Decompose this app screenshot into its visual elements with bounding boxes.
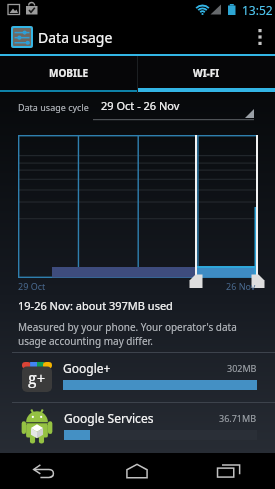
staticText: Measured by your phone. Your operator's … xyxy=(18,320,237,348)
staticText: 302MB xyxy=(227,362,257,374)
button[interactable]: Google Services xyxy=(0,403,275,452)
staticText: g+ xyxy=(28,367,46,389)
staticText: WI-FI xyxy=(193,66,220,80)
staticText: MOBILE xyxy=(49,66,89,80)
button[interactable]: Data usage xyxy=(11,26,33,48)
staticText: 29 Oct - 26 Nov xyxy=(101,98,180,113)
button[interactable]: WI-FI xyxy=(138,56,275,93)
button[interactable]: 29 Oct - 26 Nov xyxy=(93,94,254,121)
staticText: 36.71MB xyxy=(219,412,257,424)
button[interactable]: Back xyxy=(0,453,91,489)
button[interactable]: g+ xyxy=(0,353,275,402)
staticText: 19-26 Nov: about 397MB used xyxy=(18,298,173,313)
staticText: Data usage cycle xyxy=(18,101,89,113)
button[interactable]: Home xyxy=(91,453,183,489)
staticText: Google+ xyxy=(63,360,111,376)
staticText: 13:52 xyxy=(242,2,273,18)
button[interactable]: Recent apps xyxy=(183,453,275,489)
staticText: Data usage xyxy=(38,28,113,47)
staticText: 29 Oct xyxy=(18,280,46,292)
staticText: 26 Nov xyxy=(226,280,256,292)
staticText: Google Services xyxy=(64,410,154,426)
button[interactable]: MOBILE xyxy=(0,56,137,93)
button[interactable]: More options xyxy=(245,20,275,54)
